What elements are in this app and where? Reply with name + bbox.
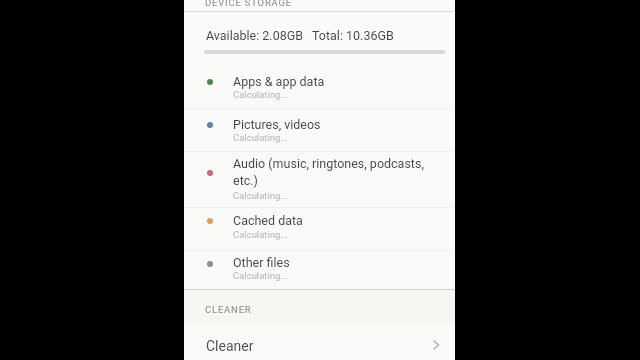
button[interactable]: Cleaner xyxy=(184,325,455,360)
staticText: Calculating... xyxy=(233,132,288,143)
staticText: Calculating... xyxy=(233,270,288,281)
staticText: CLEANER xyxy=(205,304,252,315)
staticText: Apps & app data xyxy=(233,74,325,89)
button[interactable]: Other files xyxy=(184,250,455,288)
button[interactable]: Pictures, videos xyxy=(184,109,455,150)
staticText: Cached data xyxy=(233,213,303,228)
staticText: Calculating... xyxy=(233,89,288,100)
staticText: DEVICE STORAGE xyxy=(205,0,292,8)
staticText: Total: 10.36GB xyxy=(312,28,394,43)
staticText: Available: 2.08GB xyxy=(206,28,303,43)
staticText: Audio (music, ringtones, podcasts, xyxy=(233,156,424,171)
staticText: Calculating... xyxy=(233,190,288,201)
button[interactable]: Cached data xyxy=(184,207,455,247)
staticText: Pictures, videos xyxy=(233,117,321,132)
button[interactable]: Audio (music, ringtones, podcasts, xyxy=(184,152,455,208)
button[interactable]: Apps & app data xyxy=(184,66,455,107)
staticText: Cleaner xyxy=(206,338,254,354)
staticText: etc.) xyxy=(233,173,258,188)
staticText: Other files xyxy=(233,255,290,270)
staticText: Calculating... xyxy=(233,229,288,240)
